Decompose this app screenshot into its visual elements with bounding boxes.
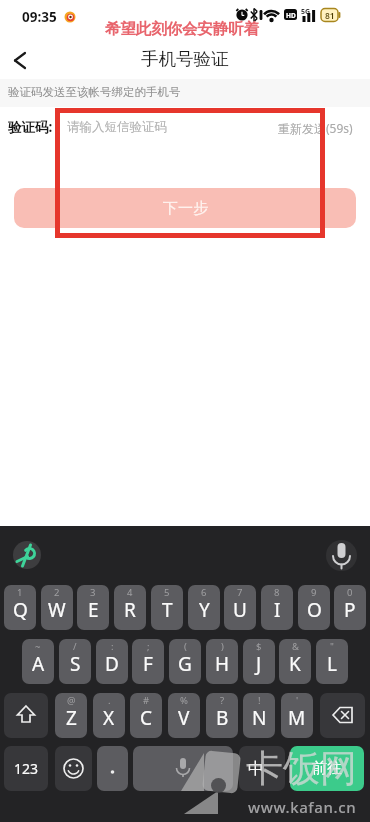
staticText: I — [274, 597, 281, 623]
staticText: 9 — [311, 586, 317, 599]
staticText: Z — [66, 705, 77, 731]
staticText: 下一步 — [163, 199, 208, 218]
staticText: 前往 — [312, 759, 342, 778]
staticText: 手机号验证 — [141, 48, 229, 70]
staticText: V — [178, 705, 190, 731]
staticText: 8 — [274, 586, 280, 599]
staticText: E — [88, 597, 99, 623]
staticText: " — [330, 640, 334, 653]
staticText: ' — [296, 694, 299, 707]
staticText: L — [327, 651, 337, 677]
staticText: & — [292, 640, 299, 653]
staticText: 重新发送(59s) — [278, 120, 353, 136]
staticText: A — [32, 651, 45, 677]
staticText: 2 — [54, 586, 60, 599]
staticText: X — [103, 705, 115, 731]
staticText: 5G — [301, 7, 311, 17]
staticText: www.kafan.cn — [248, 797, 357, 817]
staticText: 希望此刻你会安静听着 — [105, 19, 259, 38]
staticText: Y — [199, 597, 210, 623]
staticText: . — [108, 694, 111, 707]
staticText: J — [256, 651, 262, 677]
staticText: N — [252, 705, 267, 731]
staticText: ( — [184, 640, 187, 653]
staticText: % — [180, 694, 188, 707]
staticText: 0 — [347, 586, 353, 599]
staticText: G — [178, 651, 192, 677]
staticText: B — [216, 705, 229, 731]
staticText: $ — [256, 640, 262, 653]
staticText: ) — [221, 640, 224, 653]
staticText: @ — [67, 694, 76, 707]
staticText: HD — [286, 11, 296, 20]
staticText: 81 — [325, 10, 335, 22]
staticText: 验证码发送至该帐号绑定的手机号 — [8, 85, 181, 99]
staticText: M — [288, 705, 306, 731]
staticText: D — [105, 651, 119, 677]
staticText: O — [307, 597, 322, 623]
staticText: F — [143, 651, 153, 677]
staticText: Q — [13, 597, 28, 623]
staticText: 6 — [201, 586, 207, 599]
staticText: 123 — [14, 759, 39, 778]
staticText: T — [162, 597, 173, 623]
staticText: ; — [147, 640, 150, 653]
staticText: 验证码: — [8, 118, 53, 136]
staticText: 中 — [248, 759, 264, 779]
staticText: R — [124, 597, 136, 623]
staticText: K — [289, 651, 301, 677]
staticText: 请输入短信验证码 — [67, 119, 167, 135]
staticText: P — [344, 597, 356, 623]
staticText: 卡饭网 — [246, 745, 357, 792]
staticText: 5 — [164, 586, 170, 599]
staticText: : — [111, 640, 114, 653]
staticText: 1 — [17, 586, 23, 599]
staticText: ~ — [35, 640, 41, 653]
staticText: H — [215, 651, 230, 677]
staticText: 3 — [90, 586, 96, 599]
staticText: ! — [258, 694, 261, 707]
staticText: 4 — [127, 586, 133, 599]
staticText: S — [70, 651, 81, 677]
staticText: / — [73, 640, 77, 653]
staticText: C — [140, 705, 153, 731]
staticText: U — [233, 597, 247, 623]
staticText: ? — [220, 694, 225, 707]
staticText: # — [143, 694, 150, 707]
staticText: 09:35 — [22, 8, 57, 26]
staticText: W — [48, 597, 66, 623]
staticText: 7 — [237, 586, 243, 599]
